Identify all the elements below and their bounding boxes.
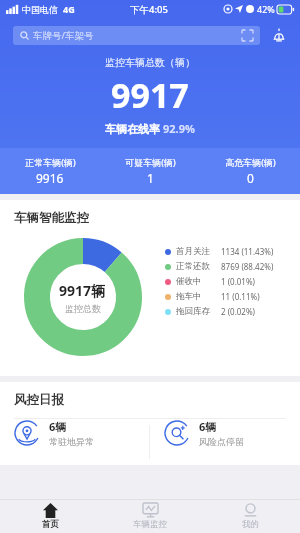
staticText: 6辆 (49, 419, 67, 434)
staticText: 4G (63, 3, 75, 15)
button[interactable]: Vehicle status donut chart (0, 236, 165, 358)
button[interactable]: 拖车中 (165, 289, 294, 304)
button[interactable]: 正常还款 (165, 259, 294, 274)
staticText: 拖车中 (176, 291, 202, 302)
staticText: 车辆在线率 (105, 121, 163, 136)
button[interactable]: 车辆监控 (100, 503, 200, 530)
staticText: 风控日报 (14, 392, 64, 408)
button[interactable]: 拖回库存 (165, 304, 294, 319)
staticText: 9916 (36, 170, 64, 186)
staticText: 中国电信 (22, 4, 58, 15)
staticText: 我的 (242, 519, 259, 530)
staticText: 11 (0.11%) (221, 291, 260, 302)
staticText: 监控总数 (65, 303, 101, 314)
staticText: 9917 (111, 72, 189, 118)
button[interactable]: 车牌号/车架号 (13, 26, 260, 45)
staticText: 8769 (88.42%) (221, 261, 274, 272)
staticText: 6辆 (199, 419, 217, 434)
button[interactable]: 首页 (0, 503, 100, 530)
staticText: 风险点停留 (199, 436, 244, 447)
button[interactable]: 可疑车辆(辆) (100, 156, 200, 186)
button[interactable]: 高危车辆(辆) (200, 156, 300, 186)
button[interactable]: 6辆 (0, 419, 149, 447)
button[interactable]: 6辆 (150, 419, 300, 447)
staticText: 正常车辆(辆) (25, 156, 76, 168)
staticText: 车牌号/车架号 (33, 29, 94, 42)
button[interactable]: 首月关注 (165, 244, 294, 259)
other: Scan (242, 30, 253, 41)
staticText: 监控车辆总数（辆） (105, 56, 195, 69)
staticText: 1 (147, 170, 154, 186)
staticText: 常驻地异常 (49, 436, 94, 447)
staticText: 下午4:05 (130, 3, 168, 16)
button[interactable]: 催收中 (165, 274, 294, 289)
staticText: 2 (0.02%) (221, 306, 255, 317)
staticText: 可疑车辆(辆) (125, 156, 176, 168)
staticText: 0 (247, 170, 254, 186)
button[interactable]: 正常车辆(辆) (0, 156, 100, 186)
staticText: 首月关注 (176, 246, 210, 257)
staticText: 催收中 (176, 276, 202, 287)
staticText: 首页 (42, 519, 59, 530)
staticText: 9917辆 (59, 281, 106, 300)
staticText: 正常还款 (176, 261, 210, 272)
staticText: 92.9% (163, 121, 195, 136)
staticText: 1 (0.01%) (221, 276, 255, 287)
staticText: 1134 (11.43%) (221, 246, 274, 257)
staticText: 拖回库存 (176, 306, 210, 317)
staticText: 42% (257, 3, 275, 15)
staticText: 车辆智能监控 (14, 210, 89, 226)
staticText: 车辆监控 (133, 519, 167, 530)
staticText: 高危车辆(辆) (225, 156, 276, 168)
button[interactable]: 我的 (200, 503, 300, 530)
button[interactable]: Alarm (268, 24, 290, 46)
